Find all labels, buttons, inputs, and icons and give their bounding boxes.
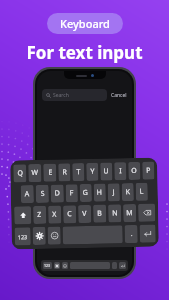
staticText: Keyboard	[60, 16, 110, 31]
staticText: K	[126, 187, 131, 197]
button[interactable]: Settings	[32, 227, 46, 245]
button[interactable]: I	[114, 162, 126, 180]
staticText: U	[103, 166, 109, 177]
button[interactable]: A	[21, 185, 34, 203]
button[interactable]: K	[122, 183, 134, 201]
button[interactable]: Settings	[54, 262, 60, 269]
staticText: .	[130, 229, 133, 239]
staticText: Cancel	[111, 92, 127, 99]
button[interactable]: H	[94, 184, 106, 202]
staticText: C	[67, 209, 72, 219]
button[interactable]: Keyboard	[47, 13, 123, 34]
button[interactable]: R	[58, 163, 71, 181]
button[interactable]: Emoji	[62, 262, 68, 269]
button[interactable]: D	[51, 184, 64, 203]
button[interactable]: Backspace	[138, 203, 155, 222]
staticText: Q	[17, 168, 23, 178]
button[interactable]	[112, 262, 117, 269]
staticText: O	[131, 166, 137, 176]
staticText: I	[119, 166, 122, 176]
button[interactable]: Z	[33, 206, 46, 224]
staticText: Search	[53, 92, 69, 99]
staticText: For text input	[26, 41, 143, 64]
staticText: X	[52, 210, 57, 220]
staticText: G	[83, 188, 89, 198]
button[interactable]: Search	[42, 89, 107, 101]
staticText: L	[140, 187, 144, 197]
staticText: 123	[44, 263, 51, 268]
button[interactable]: E	[43, 164, 57, 182]
button[interactable]: L	[136, 183, 148, 201]
button[interactable]: P	[142, 161, 154, 180]
staticText: P	[146, 166, 151, 176]
button[interactable]: 123	[14, 227, 31, 245]
staticText: N	[112, 208, 118, 218]
button[interactable]: Enter	[119, 262, 126, 269]
staticText: A	[25, 189, 30, 199]
button[interactable]: F	[66, 184, 78, 202]
button[interactable]: G	[80, 184, 92, 202]
button[interactable]: U	[100, 162, 112, 181]
button[interactable]: Y	[86, 163, 99, 181]
staticText: V	[82, 209, 87, 219]
staticText: S	[41, 189, 45, 199]
button[interactable]: M	[123, 204, 136, 222]
staticText: M	[126, 208, 133, 218]
button[interactable]: W	[28, 164, 42, 182]
staticText: E	[48, 168, 52, 178]
button[interactable]	[62, 225, 123, 244]
button[interactable]: V	[78, 205, 91, 223]
button[interactable]: Emoji	[47, 226, 61, 245]
staticText: Y	[90, 167, 94, 177]
staticText: B	[97, 209, 102, 219]
staticText: W	[31, 168, 38, 178]
button[interactable]: .	[124, 225, 138, 243]
staticText: R	[62, 167, 67, 177]
button[interactable]: S	[36, 185, 49, 203]
button[interactable]: O	[128, 162, 140, 180]
staticText: T	[76, 167, 80, 177]
button[interactable]: T	[72, 163, 85, 181]
staticText: F	[70, 188, 74, 198]
button[interactable]: Enter	[139, 224, 156, 243]
staticText: Z	[37, 210, 42, 220]
button[interactable]: Shift	[14, 206, 31, 224]
staticText: H	[97, 188, 103, 198]
button[interactable]: Cancel	[111, 92, 127, 99]
button[interactable]: C	[63, 205, 76, 223]
button[interactable]: 123	[43, 262, 52, 269]
staticText: 123	[18, 233, 28, 240]
button[interactable]: B	[93, 204, 106, 223]
button[interactable]: X	[48, 205, 61, 224]
button[interactable]: J	[108, 183, 120, 201]
button[interactable]: Q	[13, 164, 27, 182]
button[interactable]: N	[108, 204, 121, 222]
staticText: J	[113, 187, 115, 197]
staticText: D	[55, 188, 61, 199]
